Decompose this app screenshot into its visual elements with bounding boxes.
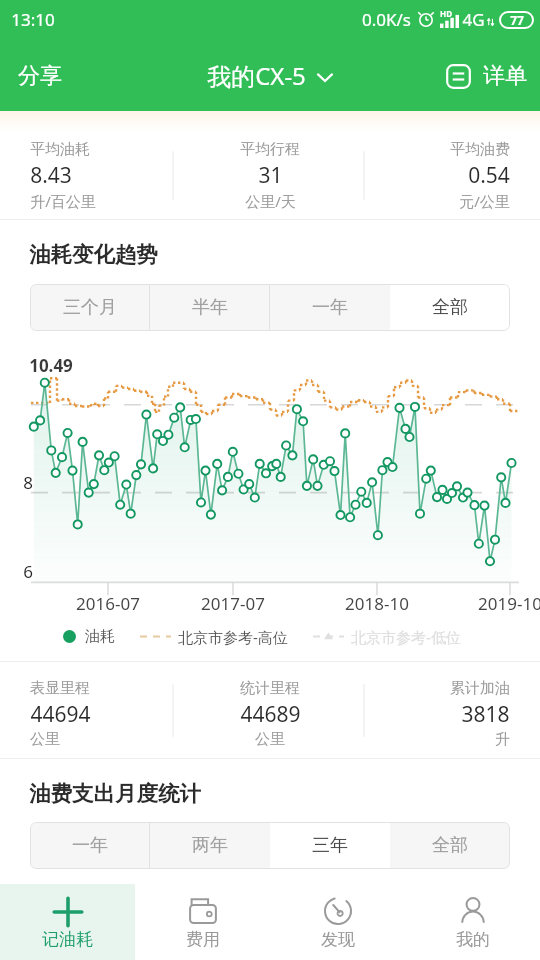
staticText: 统计里程 [240, 679, 300, 698]
staticText: 三年 [312, 834, 348, 857]
staticText: 分享 [18, 62, 62, 90]
staticText: 3818 [461, 700, 510, 729]
button[interactable]: Profile [405, 884, 540, 960]
staticText: 我的CX-5 [207, 59, 306, 92]
staticText: 公里 [30, 730, 60, 749]
staticText: 44694 [30, 700, 91, 729]
staticText: 公里 [255, 730, 285, 749]
button[interactable]: 全部 [390, 822, 510, 869]
staticText: 4G [462, 8, 485, 31]
staticText: 我的 [456, 929, 490, 950]
staticText: 油耗 [85, 627, 115, 646]
staticText: 两年 [192, 834, 228, 857]
button[interactable]: 三个月 [30, 284, 150, 331]
staticText: 77 [510, 12, 524, 28]
staticText: 累计加油 [450, 679, 510, 698]
staticText: 平均行程 [240, 140, 300, 159]
staticText: HD [440, 8, 452, 19]
staticText: 0.0K/s [362, 8, 411, 31]
staticText: 北京市参考-高位 [178, 627, 288, 647]
staticText: 2018-10 [332, 592, 422, 615]
staticText: 发现 [321, 929, 355, 950]
staticText: 公里/天 [245, 191, 296, 211]
staticText: 记油耗 [42, 929, 93, 950]
staticText: 6 [23, 560, 33, 583]
staticText: 平均油费 [450, 140, 510, 159]
staticText: 北京市参考-低位 [351, 627, 461, 647]
staticText: 油耗变化趋势 [29, 241, 158, 268]
staticText: 2019-10 [465, 592, 540, 615]
staticText: 10.49 [29, 354, 73, 377]
staticText: 表显里程 [30, 679, 90, 698]
staticText: 2017-07 [188, 592, 278, 615]
staticText: 8.43 [30, 161, 72, 190]
staticText: 平均油耗 [30, 140, 90, 159]
staticText: 全部 [432, 296, 468, 319]
staticText: 升/百公里 [30, 191, 96, 211]
button[interactable]: 分享 [0, 46, 82, 106]
staticText: 油费支出月度统计 [29, 780, 201, 807]
staticText: 费用 [186, 929, 220, 950]
button[interactable]: 一年 [270, 284, 390, 331]
staticText: 三个月 [63, 296, 117, 319]
staticText: 半年 [192, 296, 228, 319]
button[interactable]: 全部 [390, 284, 510, 331]
staticText: 13:10 [11, 8, 55, 31]
staticText: 31 [258, 161, 283, 190]
button[interactable]: 记油耗 [0, 884, 135, 960]
button[interactable]: Discover [270, 884, 405, 960]
button[interactable]: Expenses [135, 884, 270, 960]
button[interactable]: 两年 [150, 822, 270, 869]
staticText: 升 [495, 730, 510, 749]
button[interactable]: 详单 [432, 50, 540, 102]
staticText: 8 [23, 471, 33, 494]
staticText: 0.54 [468, 161, 510, 190]
button[interactable]: 三年 [270, 822, 390, 869]
staticText: 一年 [312, 296, 348, 319]
staticText: 44689 [240, 700, 301, 729]
button[interactable]: 一年 [30, 822, 150, 869]
button[interactable]: 我的CX-5 [197, 49, 343, 102]
staticText: 元/公里 [459, 191, 510, 211]
staticText: 一年 [72, 834, 108, 857]
staticText: 详单 [483, 62, 527, 90]
staticText: 全部 [432, 834, 468, 857]
staticText: 2016-07 [63, 592, 153, 615]
button[interactable]: 半年 [150, 284, 270, 331]
